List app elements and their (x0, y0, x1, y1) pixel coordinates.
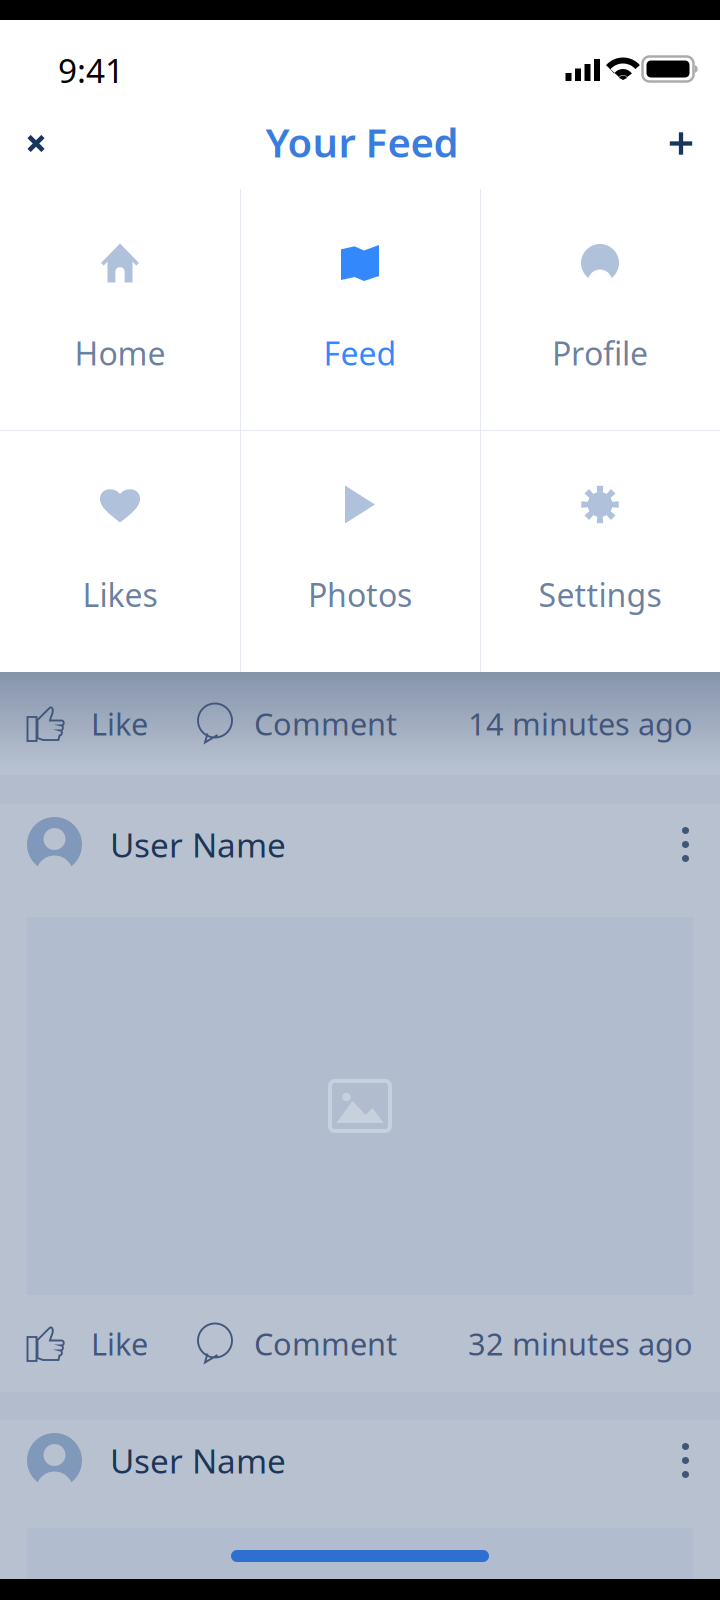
button[interactable]: Likes (0, 430, 240, 672)
staticText: 14 minutes ago (468, 703, 693, 744)
button[interactable]: Settings (480, 430, 720, 672)
button[interactable]: Photos (240, 430, 480, 672)
staticText: Like (91, 703, 148, 744)
staticText: Profile (552, 332, 648, 374)
staticText: Likes (82, 573, 157, 616)
button[interactable]: Feed (240, 189, 480, 430)
staticText: Home (74, 332, 165, 374)
staticText: Comment (254, 703, 397, 744)
staticText: User Name (110, 1438, 286, 1483)
button[interactable]: Home (0, 189, 240, 430)
staticText: 32 minutes ago (468, 1323, 693, 1364)
staticText: Feed (323, 332, 396, 374)
button[interactable]: Add (645, 107, 717, 179)
staticText: Your Feed (265, 115, 458, 168)
staticText: Like (91, 1323, 148, 1364)
staticText: Comment (254, 1323, 397, 1364)
button[interactable]: Close (0, 107, 72, 179)
staticText: 9:41 (58, 48, 124, 92)
staticText: Settings (538, 573, 661, 616)
staticText: User Name (110, 822, 286, 867)
button[interactable]: Profile (480, 189, 720, 430)
staticText: Photos (308, 573, 412, 616)
